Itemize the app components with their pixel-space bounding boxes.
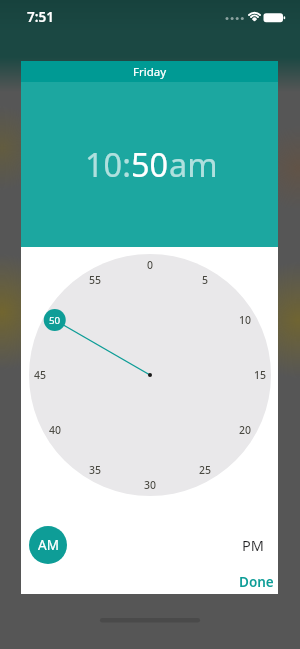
staticText: 50 — [49, 314, 61, 327]
staticText: AM — [38, 536, 59, 554]
button[interactable]: 35 — [83, 460, 107, 480]
staticText: 7:51 — [27, 8, 54, 26]
staticText: 20 — [239, 423, 252, 437]
staticText: Done — [239, 573, 274, 591]
staticText: 25 — [199, 463, 212, 477]
staticText: 5 — [202, 273, 209, 287]
button[interactable]: 0 — [138, 255, 162, 275]
button[interactable]: 30 — [138, 475, 162, 495]
staticText: 15 — [254, 368, 267, 382]
staticText: am — [169, 142, 218, 186]
button[interactable]: 10 — [233, 310, 257, 330]
button[interactable]: 15 — [248, 365, 272, 385]
button[interactable]: 40 — [43, 420, 67, 440]
button[interactable]: 5 — [193, 270, 217, 290]
staticText: 30 — [144, 478, 157, 492]
button[interactable]: 55 — [83, 270, 107, 290]
button[interactable]: Friday — [21, 61, 278, 82]
staticText: 0 — [147, 258, 154, 272]
button[interactable]: AM — [29, 526, 67, 564]
button[interactable]: 20 — [233, 420, 257, 440]
button[interactable]: Done — [231, 571, 281, 592]
staticText: 50 — [131, 142, 169, 186]
staticText: Friday — [133, 64, 167, 80]
staticText: 35 — [89, 463, 102, 477]
staticText: 10 — [239, 313, 252, 327]
button[interactable]: 50 — [43, 309, 66, 332]
button[interactable]: PM — [232, 534, 273, 555]
button[interactable]: 45 — [28, 365, 52, 385]
staticText: 10: — [85, 142, 131, 186]
staticText: 45 — [34, 368, 47, 382]
button[interactable]: 25 — [193, 460, 217, 480]
staticText: PM — [242, 535, 264, 555]
staticText: 40 — [49, 423, 62, 437]
staticText: 55 — [89, 273, 102, 287]
